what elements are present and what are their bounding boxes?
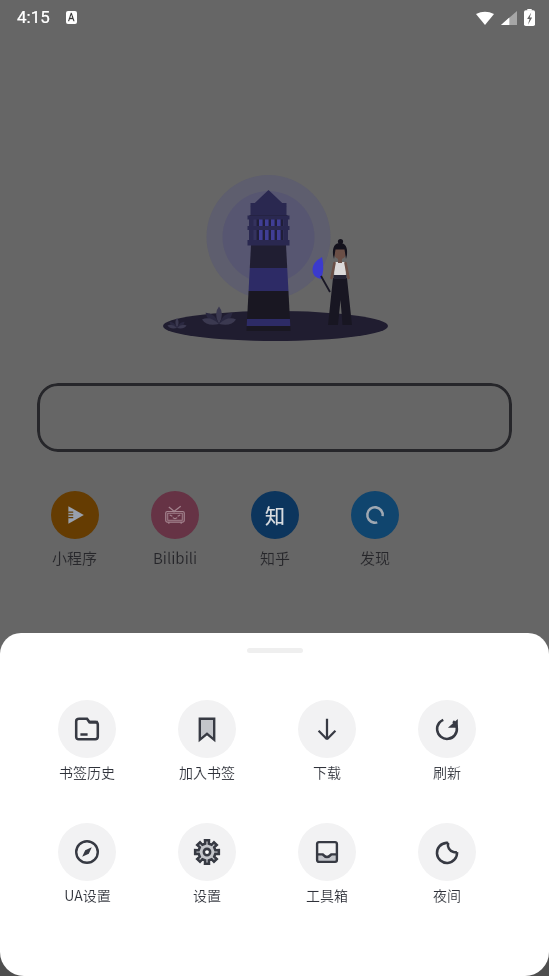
- button[interactable]: 书签历史: [27, 700, 147, 782]
- staticText: 4:15: [17, 7, 50, 27]
- button[interactable]: 刷新: [387, 700, 507, 782]
- staticText: 知乎: [260, 547, 291, 569]
- staticText: 书签历史: [59, 762, 115, 782]
- staticText: UA设置: [64, 885, 111, 905]
- staticText: 小程序: [52, 547, 98, 569]
- button[interactable]: Bilibili: [125, 491, 225, 569]
- staticText: 工具箱: [306, 885, 348, 905]
- button[interactable]: 工具箱: [267, 823, 387, 905]
- button[interactable]: 知: [225, 491, 325, 569]
- button[interactable]: UA设置: [27, 823, 147, 905]
- staticText: 夜间: [433, 885, 461, 905]
- staticText: 加入书签: [179, 762, 235, 782]
- button[interactable]: 夜间: [387, 823, 507, 905]
- staticText: 刷新: [433, 762, 461, 782]
- staticText: 发现: [360, 547, 391, 569]
- button[interactable]: 设置: [147, 823, 267, 905]
- button[interactable]: 下载: [267, 700, 387, 782]
- button[interactable]: 加入书签: [147, 700, 267, 782]
- staticText: Bilibili: [153, 547, 198, 569]
- staticText: A: [68, 12, 75, 24]
- staticText: 下载: [313, 762, 341, 782]
- button[interactable]: 发现: [325, 491, 425, 569]
- button[interactable]: Search: [37, 383, 512, 452]
- button[interactable]: 小程序: [25, 491, 125, 569]
- staticText: 设置: [193, 885, 221, 905]
- staticText: 知: [265, 501, 285, 530]
